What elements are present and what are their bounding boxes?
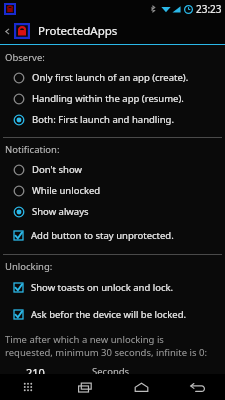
- staticText: Ask befor the device will be locked.: [31, 308, 187, 321]
- staticText: Add button to stay unprotected.: [31, 229, 174, 242]
- button[interactable]: Only first launch of an app (create).: [0, 67, 225, 88]
- staticText: Seconds: [92, 365, 130, 374]
- staticText: Only first launch of an app (create).: [32, 71, 189, 84]
- staticText: requested, minimum 30 seconds, infinite …: [5, 346, 208, 359]
- staticText: Both: First launch and handling.: [32, 113, 175, 126]
- button[interactable]: Show toasts on unlock and lock.: [0, 276, 225, 299]
- staticText: Don't show: [32, 163, 82, 176]
- staticText: Show always: [32, 205, 89, 218]
- staticText: ProtectedApps: [38, 23, 118, 39]
- staticText: Time after which a new unlocking is: [5, 333, 164, 346]
- staticText: While unlocked: [32, 184, 101, 197]
- button[interactable]: Ask befor the device will be locked.: [0, 303, 225, 326]
- staticText: Observe:: [5, 51, 45, 64]
- staticText: 210: [26, 365, 45, 374]
- staticText: Show toasts on unlock and lock.: [31, 281, 174, 294]
- button[interactable]: Show always: [0, 201, 225, 222]
- button[interactable]: Navigate up: [2, 21, 12, 41]
- staticText: Handling within the app (resume).: [32, 92, 184, 105]
- button[interactable]: 210: [22, 365, 80, 374]
- staticText: Notification:: [5, 143, 60, 156]
- button[interactable]: Back: [169, 374, 225, 400]
- staticText: Unlocking:: [5, 260, 53, 273]
- staticText: 23:23: [196, 2, 222, 16]
- button[interactable]: Handling within the app (resume).: [0, 88, 225, 109]
- button[interactable]: All apps: [0, 374, 57, 400]
- button[interactable]: Recent apps: [57, 374, 113, 400]
- button[interactable]: Home: [113, 374, 169, 400]
- button[interactable]: Add button to stay unprotected.: [0, 224, 225, 247]
- button[interactable]: While unlocked: [0, 180, 225, 201]
- button[interactable]: Both: First launch and handling.: [0, 109, 225, 130]
- button[interactable]: Don't show: [0, 159, 225, 180]
